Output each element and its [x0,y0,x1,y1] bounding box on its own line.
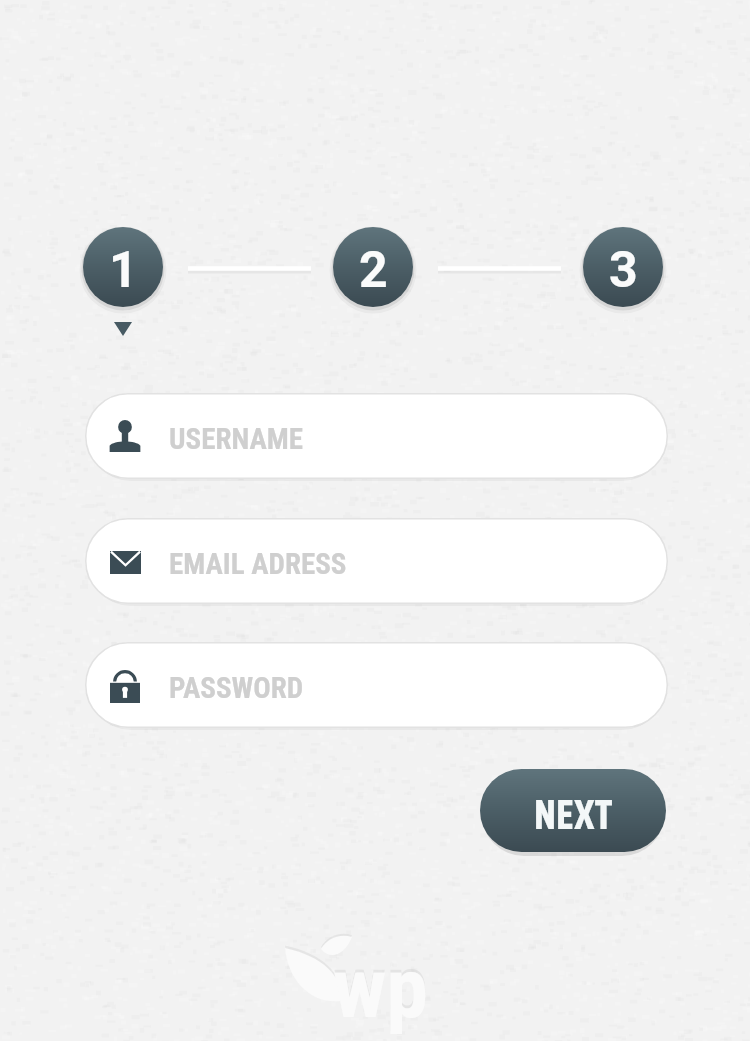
staticText: 3 [609,241,638,300]
staticText: PASSWORD [169,671,304,705]
staticText: 1 [109,241,138,300]
button[interactable]: EMAIL ADRESS [85,518,668,604]
button[interactable]: 1 [83,227,163,307]
staticText: wp [333,939,428,1037]
staticText: wp [333,936,428,1034]
staticText: EMAIL ADRESS [169,547,347,581]
button[interactable]: USERNAME [85,393,668,479]
button[interactable]: NEXT [480,769,666,852]
button[interactable]: 3 [583,227,663,307]
other: Current step [114,322,132,336]
staticText: NEXT [534,781,613,847]
button[interactable]: 2 [333,227,413,307]
button[interactable]: PASSWORD [85,642,668,728]
staticText: 2 [359,241,388,300]
staticText: USERNAME [169,422,304,456]
